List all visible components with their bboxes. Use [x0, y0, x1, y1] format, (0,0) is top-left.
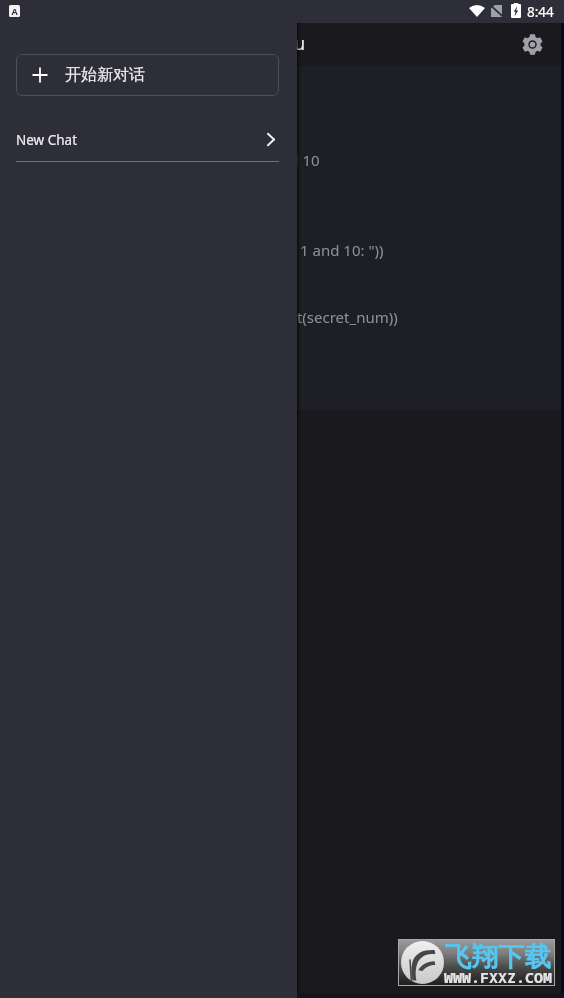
button[interactable]: New Chat	[16, 118, 275, 161]
staticText: New Chat	[16, 131, 78, 149]
staticText: 8:44	[527, 3, 554, 21]
staticText: 飞翔下载	[445, 940, 551, 973]
staticText: Python Menu	[195, 31, 305, 55]
button[interactable]: 开始新对话	[16, 54, 279, 96]
staticText: # Guess a number between 1 and 10	[61, 150, 320, 170]
staticText: ("The number was {}".format(secret_num))	[100, 307, 398, 327]
staticText: ss = int(input("Guess a number between 1…	[14, 240, 384, 260]
button[interactable]: Settings	[520, 32, 544, 56]
staticText: A	[11, 5, 18, 17]
staticText: 开始新对话	[65, 65, 145, 85]
staticText: WWW.FXXZ.COM	[444, 967, 553, 987]
